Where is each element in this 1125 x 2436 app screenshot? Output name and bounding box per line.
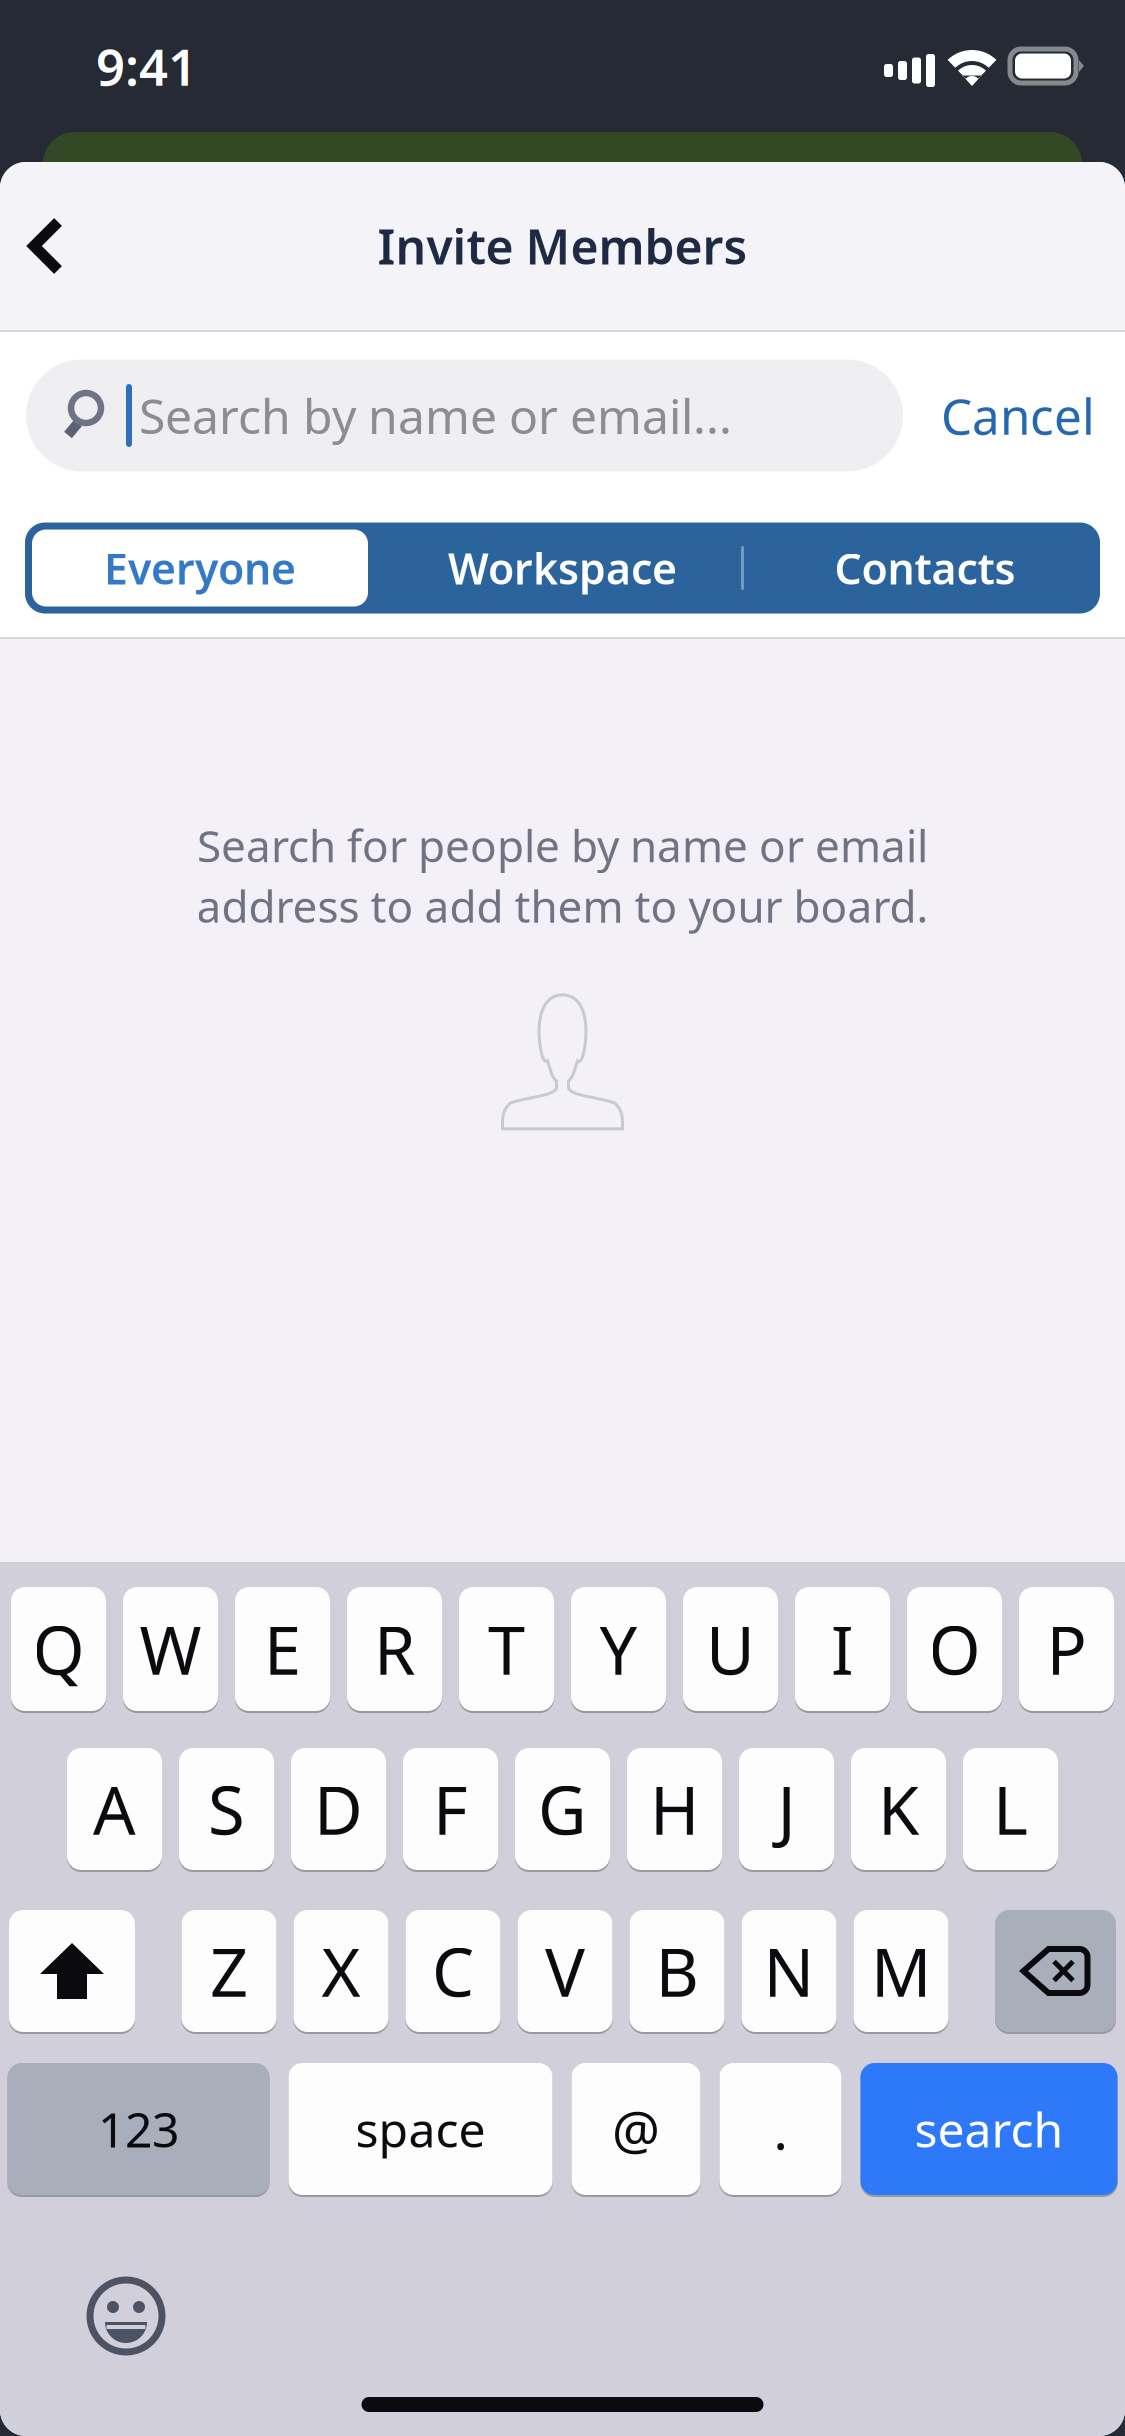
staticText: Search by name or email...	[139, 384, 732, 447]
staticText: .	[773, 2094, 787, 2164]
button[interactable]: L	[963, 1748, 1058, 1870]
staticText: V	[545, 1927, 585, 2015]
button[interactable]: .	[719, 2063, 841, 2195]
staticText: 123	[98, 2097, 179, 2161]
button[interactable]: X	[293, 1910, 388, 2032]
staticText: Y	[599, 1605, 637, 1693]
staticText: J	[777, 1765, 795, 1853]
staticText: Z	[210, 1927, 248, 2015]
staticText: space	[355, 2097, 485, 2161]
staticText: R	[374, 1605, 415, 1693]
button[interactable]: H	[627, 1748, 722, 1870]
button[interactable]: C	[405, 1910, 500, 2032]
staticText: Q	[32, 1605, 84, 1693]
staticText: M	[871, 1927, 931, 2015]
staticText: N	[763, 1927, 814, 2015]
staticText: E	[264, 1605, 301, 1693]
staticText: A	[93, 1765, 136, 1853]
button[interactable]: Shift	[9, 1910, 135, 2032]
staticText: K	[878, 1765, 919, 1853]
button[interactable]: Contacts	[750, 522, 1100, 613]
staticText: X	[321, 1927, 360, 2015]
button[interactable]: search	[860, 2063, 1117, 2195]
button[interactable]: Cancel	[903, 359, 1099, 471]
staticText: I	[831, 1605, 854, 1693]
staticText: G	[538, 1765, 587, 1853]
staticText: Invite Members	[377, 214, 747, 278]
button[interactable]: Y	[571, 1587, 666, 1711]
button[interactable]: W	[123, 1587, 218, 1711]
staticText: W	[139, 1605, 201, 1693]
button[interactable]: Z	[181, 1910, 276, 2032]
button[interactable]: Everyone	[25, 522, 375, 613]
button[interactable]: Back	[0, 186, 92, 306]
staticText: Contacts	[834, 540, 1015, 596]
button[interactable]: 123	[7, 2063, 269, 2195]
staticText: D	[314, 1765, 363, 1853]
button[interactable]: T	[459, 1587, 554, 1711]
staticText: B	[655, 1927, 698, 2015]
button[interactable]: space	[288, 2063, 552, 2195]
button[interactable]: P	[1019, 1587, 1114, 1711]
button[interactable]: I	[795, 1587, 890, 1711]
button[interactable]: R	[347, 1587, 442, 1711]
button[interactable]: Q	[11, 1587, 106, 1711]
staticText: Cancel	[941, 383, 1095, 448]
button[interactable]: U	[683, 1587, 778, 1711]
button[interactable]: J	[739, 1748, 834, 1870]
staticText: F	[433, 1765, 468, 1853]
staticText: Workspace	[448, 540, 677, 596]
button[interactable]: V	[517, 1910, 612, 2032]
staticText: address to add them to your board.	[196, 876, 928, 935]
staticText: S	[208, 1765, 245, 1853]
button[interactable]: A	[67, 1748, 162, 1870]
staticText: L	[993, 1765, 1028, 1853]
button[interactable]: M	[853, 1910, 948, 2032]
staticText: C	[432, 1927, 474, 2015]
staticText: @	[612, 2094, 660, 2164]
button[interactable]: K	[851, 1748, 946, 1870]
button[interactable]: Emoji keyboard	[80, 2270, 172, 2362]
button[interactable]: Workspace	[375, 522, 750, 613]
button[interactable]: D	[291, 1748, 386, 1870]
button[interactable]: Delete	[995, 1910, 1116, 2032]
staticText: H	[650, 1765, 699, 1853]
button[interactable]: N	[741, 1910, 836, 2032]
button[interactable]: G	[515, 1748, 610, 1870]
button[interactable]: E	[235, 1587, 330, 1711]
button[interactable]: S	[179, 1748, 274, 1870]
staticText: T	[488, 1605, 525, 1693]
staticText: 9:41	[96, 32, 197, 100]
staticText: search	[914, 2097, 1063, 2161]
button[interactable]: F	[403, 1748, 498, 1870]
staticText: U	[706, 1605, 755, 1693]
staticText: P	[1046, 1605, 1086, 1693]
staticText: Search for people by name or email	[197, 816, 928, 874]
button[interactable]: @	[571, 2063, 700, 2195]
staticText: O	[928, 1605, 980, 1693]
button[interactable]: O	[907, 1587, 1002, 1711]
staticText: Everyone	[104, 540, 296, 596]
button[interactable]: B	[629, 1910, 724, 2032]
